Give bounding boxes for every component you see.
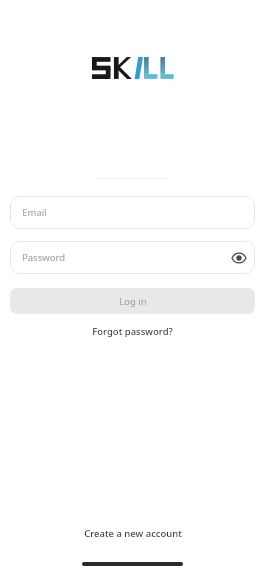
button[interactable]: Log in bbox=[10, 288, 255, 314]
other: SKILL logo bbox=[92, 55, 178, 81]
staticText: Log in bbox=[119, 295, 147, 308]
button[interactable]: Show password bbox=[230, 249, 248, 267]
staticText: Email bbox=[22, 206, 47, 219]
button[interactable]: Create a new account bbox=[0, 523, 265, 543]
button[interactable]: Forgot password? bbox=[0, 322, 265, 340]
button[interactable]: Email bbox=[10, 196, 255, 229]
staticText: Password bbox=[22, 251, 65, 264]
staticText: Forgot password? bbox=[92, 325, 173, 338]
button[interactable]: Password bbox=[10, 241, 255, 274]
staticText: Create a new account bbox=[84, 527, 182, 540]
